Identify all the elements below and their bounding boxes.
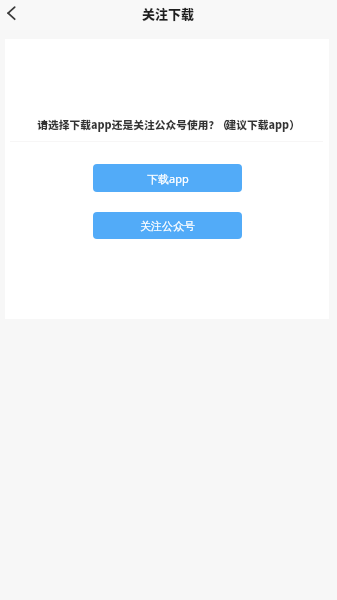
button[interactable]: Back	[0, 0, 24, 30]
staticText: 下载app	[147, 171, 189, 186]
staticText: 关注公众号	[140, 219, 195, 233]
staticText: 关注下载	[142, 4, 195, 23]
staticText: 请选择下载app还是关注公众号使用？（建议下载app）	[12, 117, 323, 133]
button[interactable]: 下载app	[93, 164, 242, 192]
button[interactable]: 关注公众号	[93, 212, 242, 239]
